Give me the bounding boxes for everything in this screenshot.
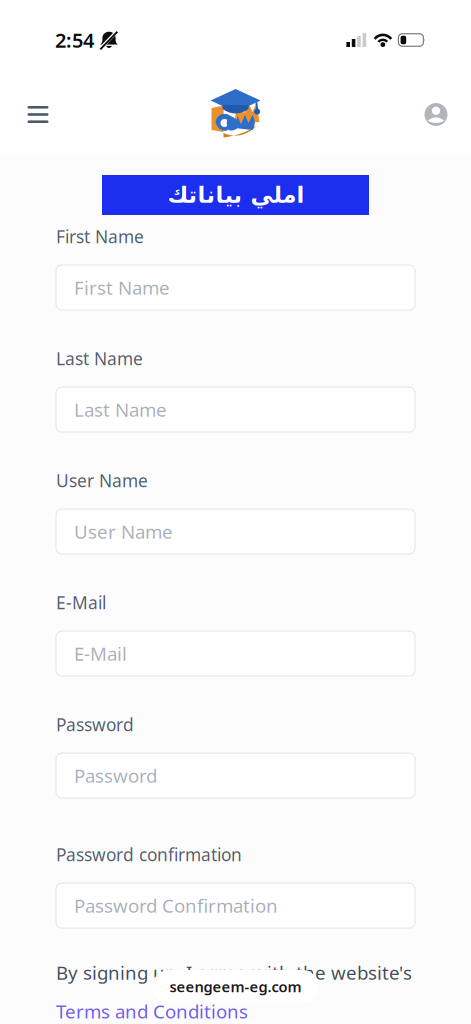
button[interactable]: Password (56, 753, 415, 798)
button[interactable]: Password Confirmation (56, 883, 415, 928)
staticText: Password Confirmation (74, 893, 278, 918)
staticText: seengeem-eg.com (169, 977, 301, 996)
staticText: E-Mail (56, 591, 106, 614)
staticText: First Name (56, 225, 144, 248)
staticText: Last Name (56, 347, 143, 370)
staticText: Password (56, 713, 134, 736)
button[interactable]: Menu (14, 90, 62, 138)
staticText: Password confirmation (56, 843, 242, 866)
staticText: 2:54 (55, 27, 94, 53)
button[interactable]: Terms and Conditions (56, 999, 248, 1024)
button[interactable]: First Name (56, 265, 415, 310)
button[interactable]: Last Name (56, 387, 415, 432)
button[interactable]: E-Mail (56, 631, 415, 676)
staticText: By signing up, I agree with the website'… (56, 960, 412, 985)
button[interactable]: User Name (56, 509, 415, 554)
button[interactable]: Account (412, 90, 460, 138)
staticText: E-Mail (74, 641, 127, 666)
staticText: Last Name (74, 397, 167, 422)
staticText: First Name (74, 275, 170, 300)
staticText: User Name (74, 519, 173, 544)
staticText: املي بياناتك (167, 182, 304, 208)
staticText: Terms and Conditions (56, 999, 248, 1024)
staticText: Password (74, 763, 157, 788)
staticText: User Name (56, 469, 148, 492)
